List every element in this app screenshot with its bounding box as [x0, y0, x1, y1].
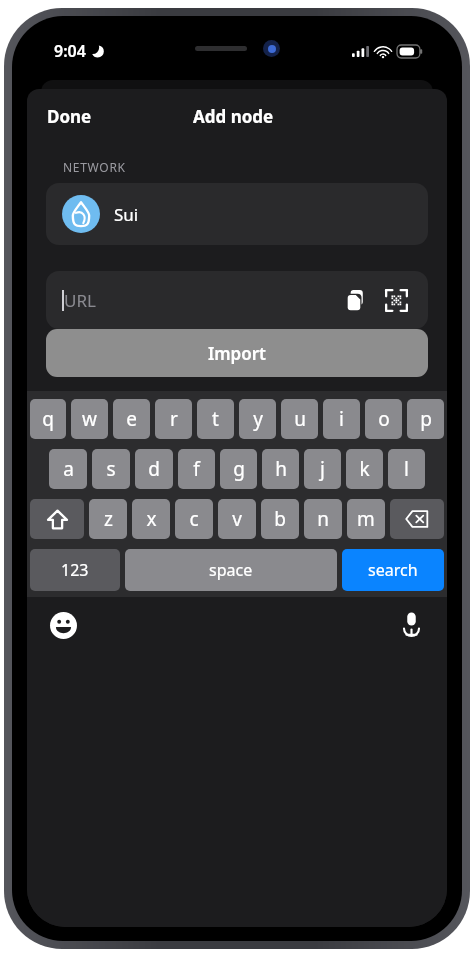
staticText: i — [339, 406, 344, 432]
staticText: s — [106, 456, 116, 482]
button[interactable]: a — [49, 449, 87, 489]
button[interactable]: Done — [37, 99, 102, 134]
button[interactable]: e — [113, 399, 150, 439]
staticText: m — [357, 506, 375, 532]
button[interactable]: Sui — [46, 183, 428, 245]
staticText: v — [232, 506, 242, 532]
staticText: o — [378, 406, 390, 432]
button[interactable]: search — [342, 549, 444, 591]
staticText: NETWORK — [63, 159, 126, 175]
button[interactable]: Scan QR code — [379, 283, 413, 317]
button[interactable]: k — [346, 449, 383, 489]
staticText: 9:04 — [54, 40, 86, 62]
staticText: w — [82, 406, 97, 432]
button[interactable]: i — [323, 399, 360, 439]
button[interactable]: v — [218, 499, 256, 539]
staticText: d — [148, 456, 160, 482]
staticText: z — [104, 506, 113, 532]
button[interactable]: d — [135, 449, 173, 489]
button[interactable]: l — [388, 449, 425, 489]
staticText: x — [146, 506, 157, 532]
button[interactable]: q — [30, 399, 66, 439]
staticText: a — [63, 456, 74, 482]
button[interactable]: Paste from clipboard — [339, 283, 373, 317]
button[interactable]: y — [239, 399, 276, 439]
button[interactable]: 123 — [30, 549, 120, 591]
staticText: f — [193, 456, 200, 482]
button[interactable]: w — [71, 399, 108, 439]
button[interactable]: o — [365, 399, 402, 439]
staticText: y — [253, 406, 263, 432]
staticText: h — [275, 456, 287, 482]
button[interactable]: t — [197, 399, 234, 439]
button[interactable]: z — [89, 499, 127, 539]
button[interactable]: space — [125, 549, 337, 591]
staticText: n — [317, 506, 329, 532]
button[interactable]: Backspace — [390, 499, 444, 539]
button[interactable]: b — [261, 499, 299, 539]
staticText: Import — [208, 342, 267, 365]
button[interactable]: g — [220, 449, 257, 489]
button[interactable]: Shift — [30, 499, 84, 539]
button[interactable]: h — [262, 449, 299, 489]
button[interactable]: Dictation — [393, 605, 429, 641]
staticText: Done — [47, 105, 92, 128]
staticText: u — [294, 406, 306, 432]
button[interactable]: Import — [46, 329, 428, 377]
staticText: q — [42, 406, 54, 432]
staticText: space — [209, 559, 253, 581]
staticText: l — [404, 456, 409, 482]
staticText: r — [170, 406, 178, 432]
staticText: t — [212, 406, 219, 432]
staticText: p — [420, 406, 432, 432]
button[interactable]: f — [178, 449, 215, 489]
staticText: e — [126, 406, 137, 432]
staticText: c — [189, 506, 199, 532]
button[interactable]: j — [304, 449, 341, 489]
button[interactable]: m — [347, 499, 385, 539]
button[interactable]: x — [132, 499, 170, 539]
staticText: URL — [64, 289, 96, 312]
button[interactable]: s — [92, 449, 130, 489]
staticText: 123 — [61, 559, 89, 581]
staticText: k — [359, 456, 370, 482]
button[interactable]: n — [304, 499, 342, 539]
button[interactable]: c — [175, 499, 213, 539]
button[interactable]: r — [155, 399, 192, 439]
staticText: Add node — [193, 105, 274, 128]
button[interactable]: Emoji — [45, 607, 81, 643]
staticText: b — [274, 506, 286, 532]
button[interactable]: u — [281, 399, 318, 439]
staticText: j — [320, 456, 325, 482]
staticText: Sui — [114, 203, 139, 226]
staticText: g — [233, 456, 245, 482]
staticText: search — [368, 559, 418, 581]
button[interactable]: p — [407, 399, 444, 439]
